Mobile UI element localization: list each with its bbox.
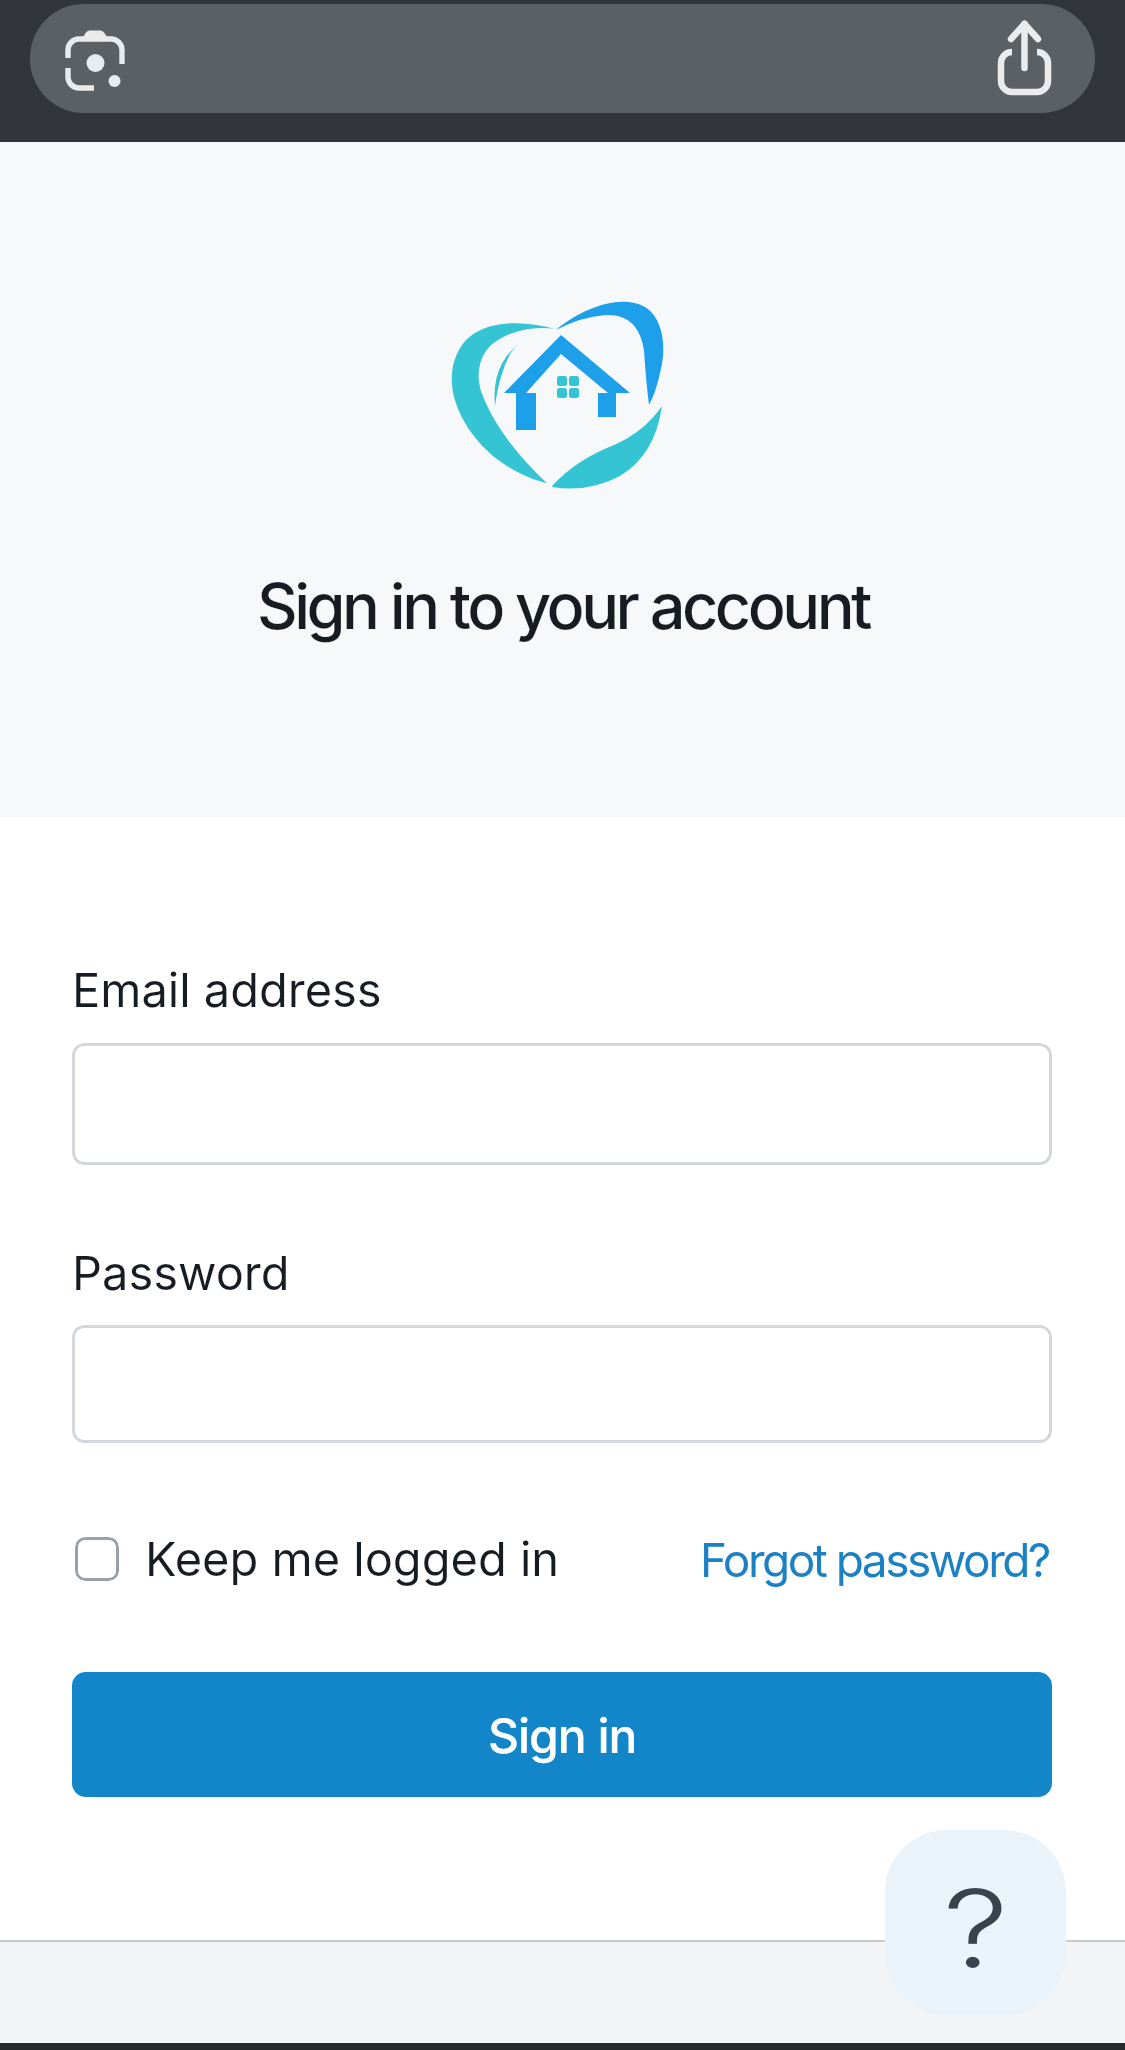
button[interactable] (30, 4, 1095, 113)
staticText: Sign in to your account (257, 568, 869, 644)
staticText: ? (943, 1863, 1009, 1992)
staticText: Keep me logged in (145, 1530, 560, 1587)
staticText: Password (72, 1244, 290, 1301)
button[interactable] (75, 1537, 119, 1581)
button[interactable]: ? (885, 1830, 1066, 2015)
button[interactable]: Sign in (72, 1672, 1052, 1797)
button[interactable] (72, 1325, 1052, 1443)
button[interactable]: Forgot password? (700, 1532, 1049, 1588)
staticText: Email address (72, 961, 382, 1018)
button[interactable] (72, 1043, 1052, 1165)
staticText: Sign in (488, 1706, 637, 1764)
